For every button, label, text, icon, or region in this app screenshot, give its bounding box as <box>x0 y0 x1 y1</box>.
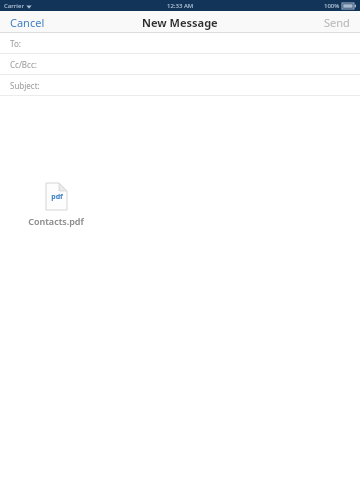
staticText: Subject: <box>10 80 40 91</box>
staticText: pdf <box>51 192 63 202</box>
button[interactable]: Send <box>314 11 360 33</box>
button[interactable]: To: <box>0 33 360 54</box>
button[interactable]: Cc/Bcc: <box>0 54 360 75</box>
staticText: New Message <box>142 15 218 30</box>
button[interactable]: Cancel <box>0 11 55 33</box>
staticText: Cc/Bcc: <box>10 59 37 70</box>
staticText: Carrier <box>4 2 24 10</box>
staticText: 100% <box>324 2 340 10</box>
staticText: Contacts.pdf <box>21 215 91 227</box>
button[interactable]: Contacts.pdf attachment <box>21 183 91 227</box>
staticText: To: <box>10 38 21 49</box>
button[interactable]: Subject: <box>0 75 360 96</box>
staticText: 12:33 AM <box>167 2 194 10</box>
staticText: Cancel <box>10 15 45 30</box>
staticText: Send <box>324 15 350 30</box>
